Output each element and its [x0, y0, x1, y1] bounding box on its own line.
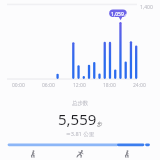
- staticText: 24:00: [133, 82, 146, 89]
- staticText: 步: [124, 13, 128, 18]
- staticText: ≈3.81 公里: [66, 130, 95, 138]
- staticText: 1,059: [111, 11, 124, 18]
- staticText: 步: [97, 121, 103, 128]
- button[interactable]: Walking activity 2: [121, 148, 133, 160]
- staticText: 00:00: [12, 82, 25, 89]
- staticText: 12:00: [73, 82, 86, 89]
- staticText: 06:00: [42, 82, 55, 89]
- staticText: 18:00: [103, 82, 116, 89]
- button[interactable]: Running activity: [74, 148, 86, 160]
- button[interactable]: Walking activity: [27, 148, 39, 160]
- staticText: 1,400: [140, 4, 153, 11]
- button[interactable]: Activity progress: [0, 0, 160, 160]
- staticText: 总步数: [72, 100, 89, 107]
- staticText: 5,559: [58, 109, 97, 129]
